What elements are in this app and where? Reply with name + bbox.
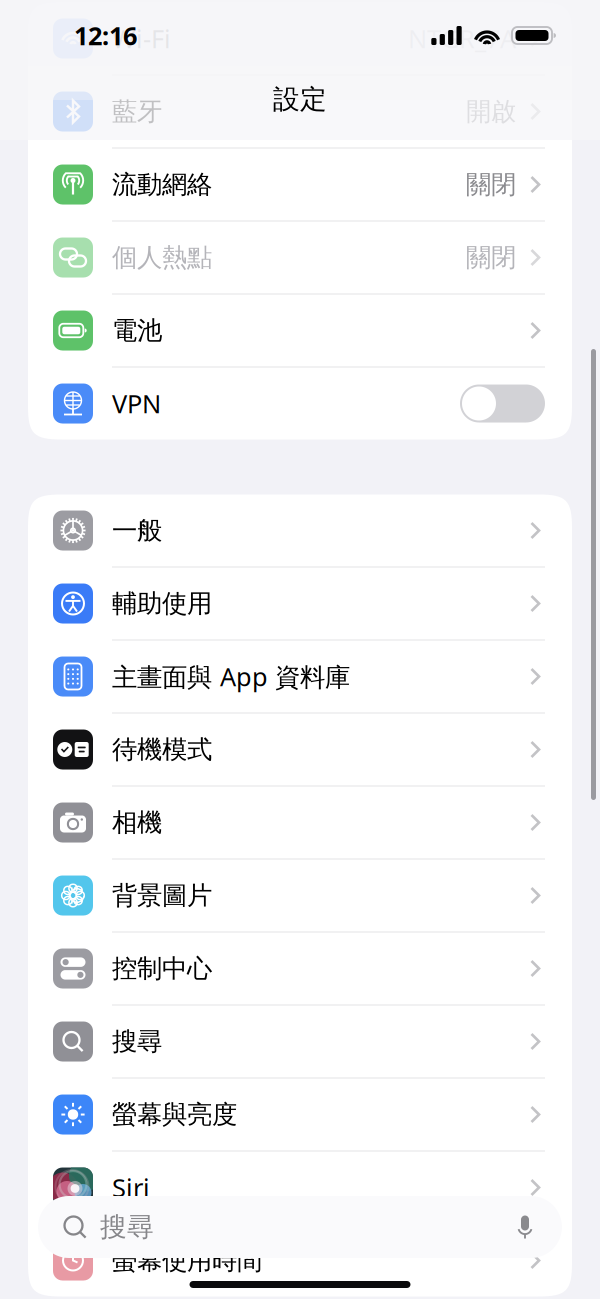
button[interactable]: 待機模式 — [28, 713, 572, 785]
staticText: Wi-Fi — [112, 22, 171, 55]
staticText: 藍牙 — [112, 96, 162, 127]
button[interactable]: 搜尋 — [38, 1196, 562, 1258]
button[interactable]: Siri — [28, 1151, 572, 1223]
button[interactable]: 背景圖片 — [28, 859, 572, 931]
staticText: 12:16 — [74, 19, 137, 52]
staticText: 背景圖片 — [112, 880, 212, 911]
staticText: 關閉 — [466, 242, 516, 273]
button[interactable]: 一般 — [28, 494, 572, 566]
button[interactable]: 藍牙 — [28, 75, 572, 147]
button[interactable]: 主畫面與 App 資料庫 — [28, 640, 572, 712]
button[interactable]: 相機 — [28, 786, 572, 858]
button[interactable]: 流動網絡 — [28, 148, 572, 220]
button[interactable]: 控制中心 — [28, 932, 572, 1004]
button[interactable]: VPN — [28, 367, 572, 439]
staticText: 搜尋 — [112, 1026, 162, 1057]
button[interactable]: Wi-Fi — [28, 2, 572, 74]
button[interactable]: 電池 — [28, 294, 572, 366]
staticText: 輔助使用 — [112, 588, 212, 619]
staticText: 相機 — [112, 807, 162, 838]
button[interactable]: 個人熱點 — [28, 221, 572, 293]
staticText: 個人熱點 — [112, 242, 212, 273]
staticText: 一般 — [112, 515, 162, 546]
staticText: 電池 — [112, 315, 162, 346]
staticText: 設定 — [273, 83, 327, 116]
staticText: Siri — [112, 1171, 150, 1204]
staticText: 螢幕與亮度 — [112, 1099, 237, 1130]
button[interactable]: 輔助使用 — [28, 567, 572, 639]
button[interactable]: 螢幕與亮度 — [28, 1078, 572, 1150]
button[interactable]: 搜尋 — [28, 1005, 572, 1077]
staticText: 主畫面與 App 資料庫 — [112, 660, 350, 693]
staticText: 搜尋 — [100, 1211, 154, 1243]
staticText: 待機模式 — [112, 734, 212, 765]
staticText: 控制中心 — [112, 953, 212, 984]
staticText: 關閉 — [466, 169, 516, 200]
staticText: NTGR_7A — [408, 22, 516, 55]
button[interactable]: 螢幕使用時間 — [28, 1224, 572, 1296]
staticText: VPN — [112, 387, 161, 420]
staticText: 螢幕使用時間 — [112, 1245, 262, 1276]
staticText: 流動網絡 — [112, 169, 212, 200]
staticText: 開啟 — [466, 96, 516, 127]
